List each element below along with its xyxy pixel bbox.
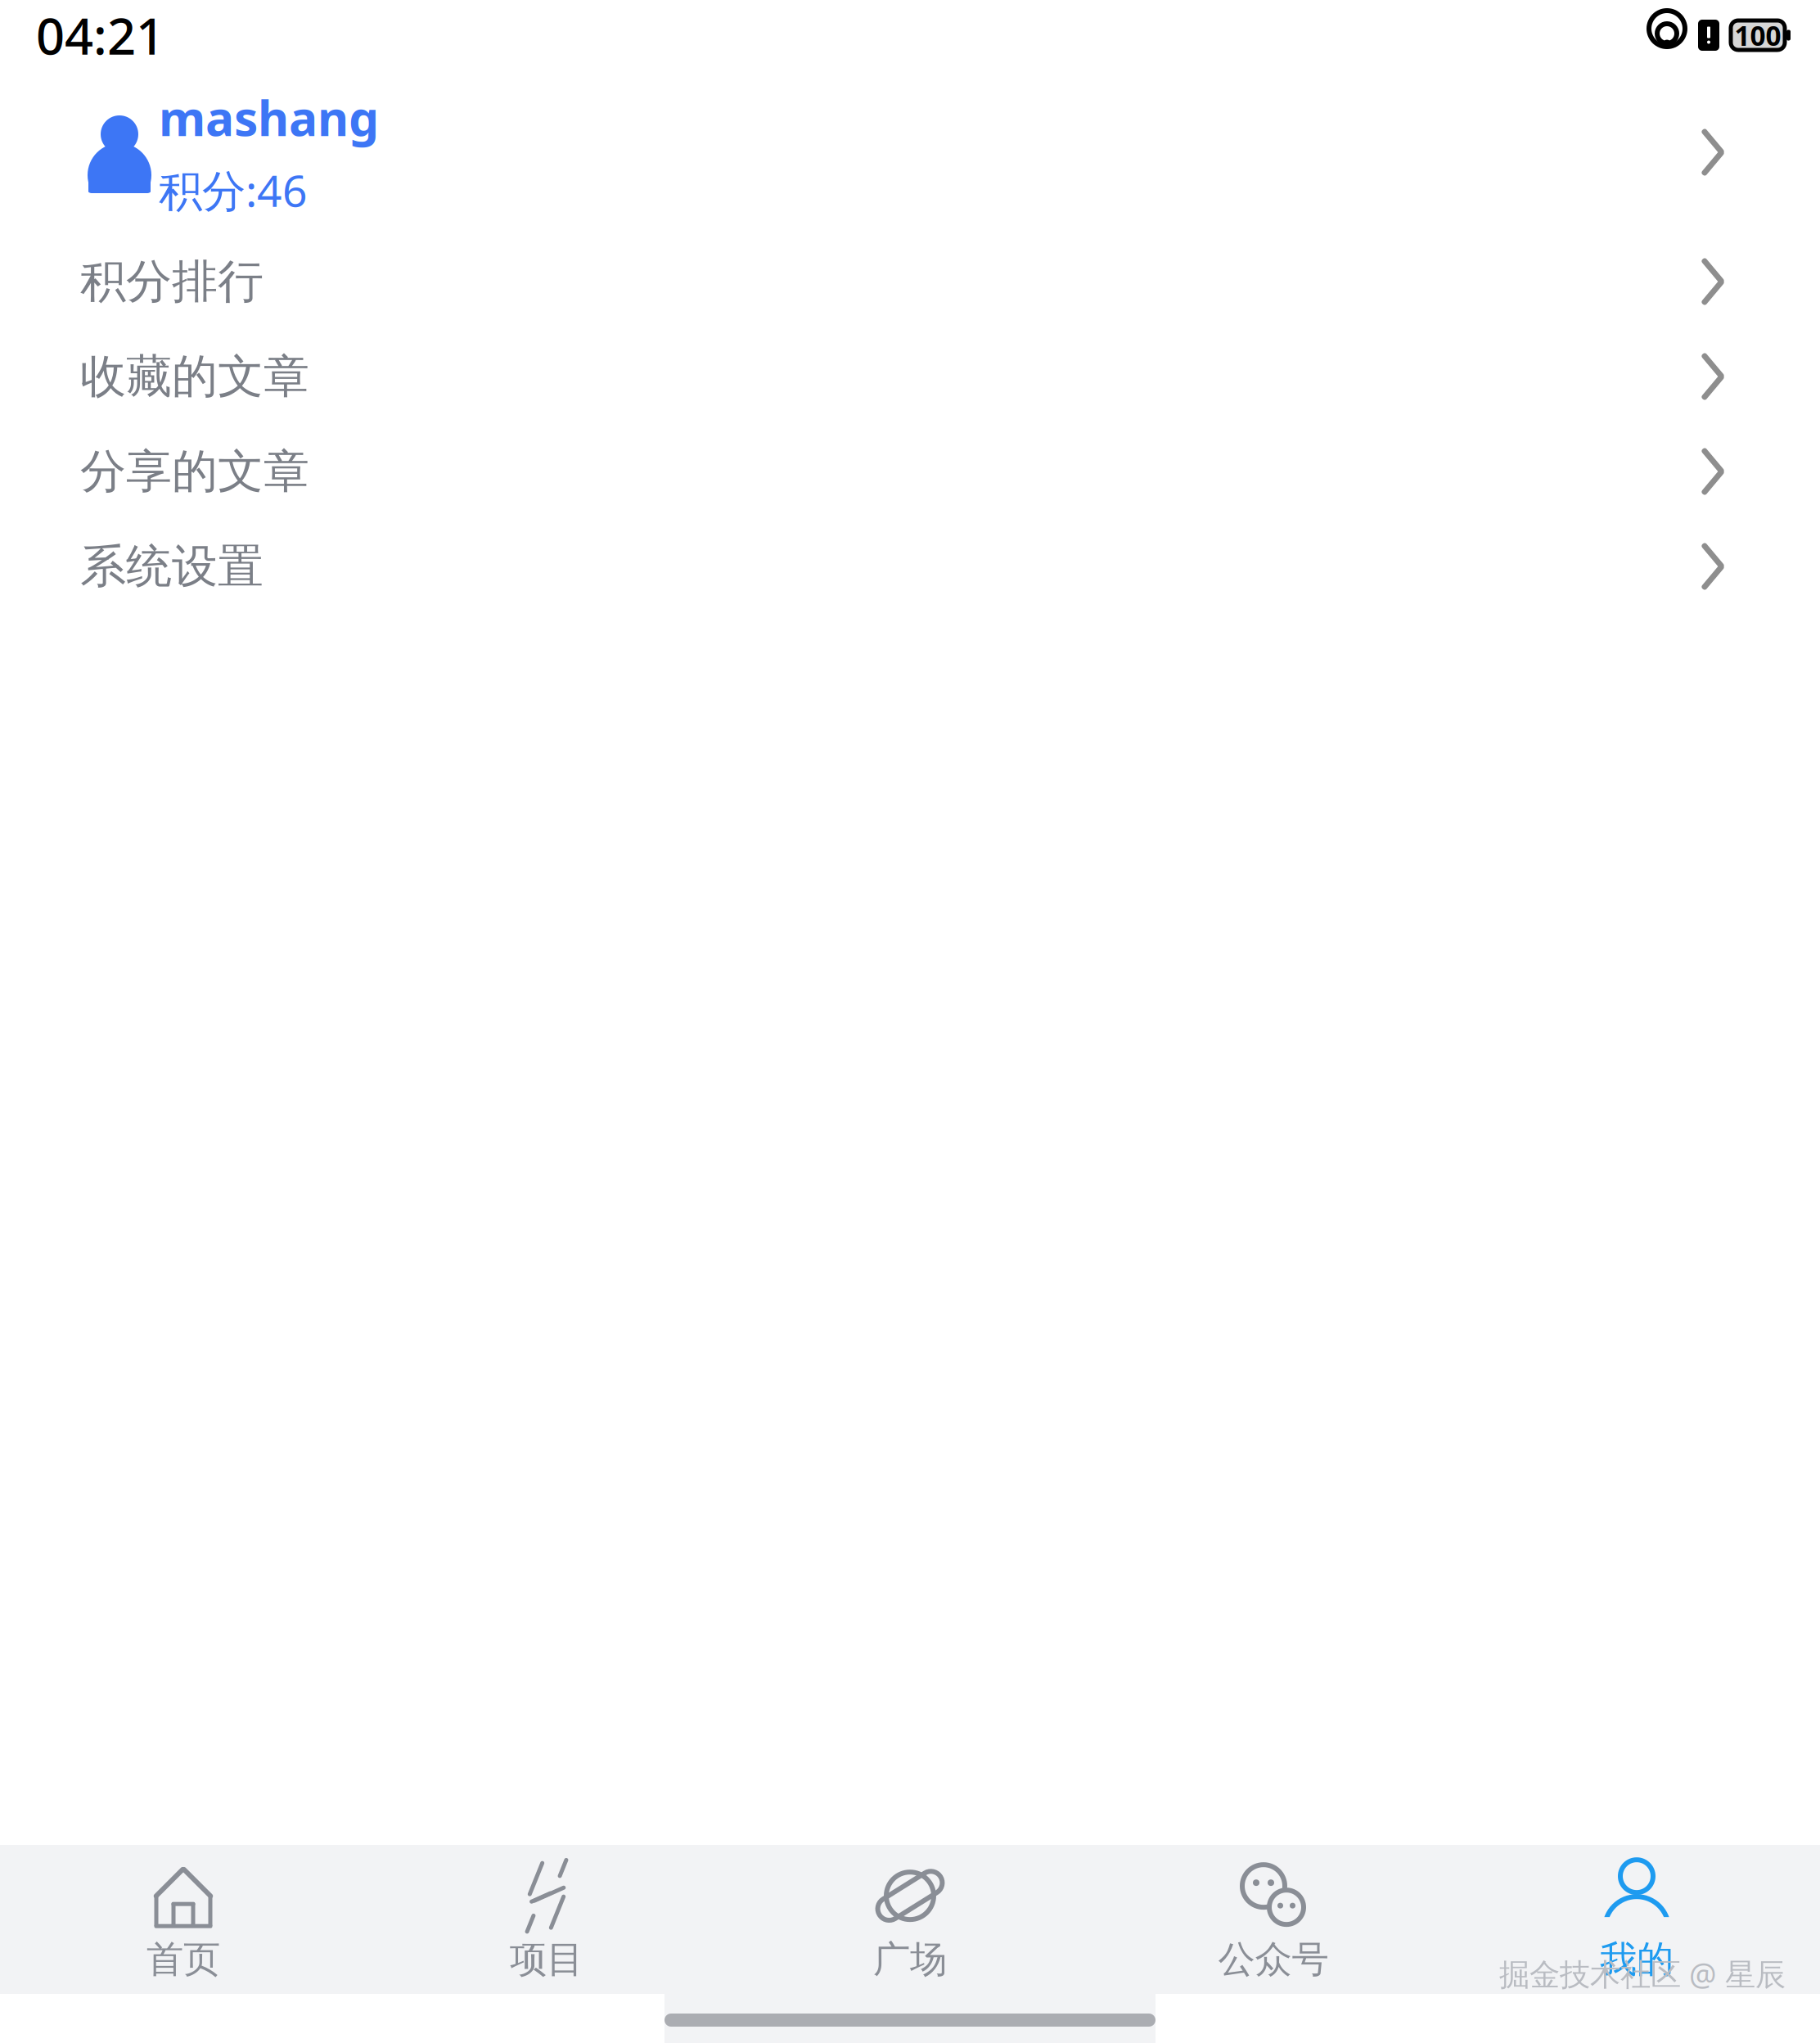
staticText: 积分排行 — [80, 253, 264, 310]
staticText: 公众号 — [1218, 1937, 1329, 1982]
button[interactable]: 分享的文章 — [0, 424, 1820, 519]
staticText: 积分:46 — [159, 161, 308, 219]
staticText: mashang — [159, 86, 379, 149]
button[interactable]: mashang — [0, 70, 1820, 234]
staticText: 项目 — [510, 1937, 583, 1982]
staticText: 分享的文章 — [80, 443, 309, 500]
staticText: 收藏的文章 — [80, 348, 309, 405]
button[interactable]: 系统设置 — [0, 519, 1820, 614]
button[interactable]: 积分排行 — [0, 234, 1820, 329]
button[interactable]: 广场 — [728, 1850, 1092, 1994]
button[interactable]: 项目 — [365, 1850, 728, 1994]
staticText: 掘金技术社区 @ 星辰 — [1499, 1953, 1786, 1994]
staticText: 100 — [1734, 17, 1781, 53]
staticText: 首页 — [146, 1937, 220, 1982]
button[interactable]: 公众号 — [1092, 1850, 1455, 1994]
button[interactable]: 首页 — [2, 1850, 365, 1994]
staticText: 广场 — [873, 1937, 947, 1982]
staticText: 系统设置 — [80, 538, 264, 595]
staticText: 我的 — [1600, 1937, 1674, 1982]
button[interactable]: 收藏的文章 — [0, 329, 1820, 424]
button[interactable]: 我的 — [1455, 1850, 1818, 1994]
staticText: 04:21 — [36, 2, 164, 69]
